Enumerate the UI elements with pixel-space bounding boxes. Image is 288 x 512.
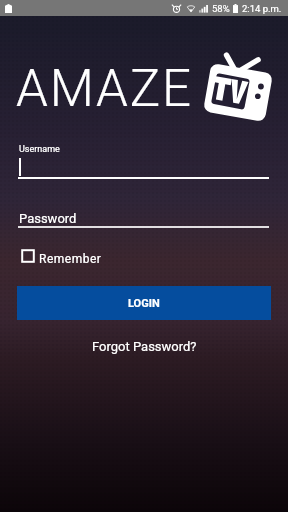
staticText: AMAZE xyxy=(16,59,193,119)
staticText: Password xyxy=(19,211,77,226)
staticText: Remember xyxy=(39,252,102,266)
staticText: LOGIN xyxy=(128,297,160,310)
button[interactable]: Remember xyxy=(20,251,102,267)
staticText: 58% xyxy=(212,3,230,14)
button[interactable]: LOGIN xyxy=(17,286,271,320)
other: Notification xyxy=(5,4,12,13)
staticText: 2:14 p.m. xyxy=(242,3,282,14)
staticText: Username xyxy=(19,144,60,155)
button[interactable]: Forgot Password? xyxy=(92,339,197,354)
